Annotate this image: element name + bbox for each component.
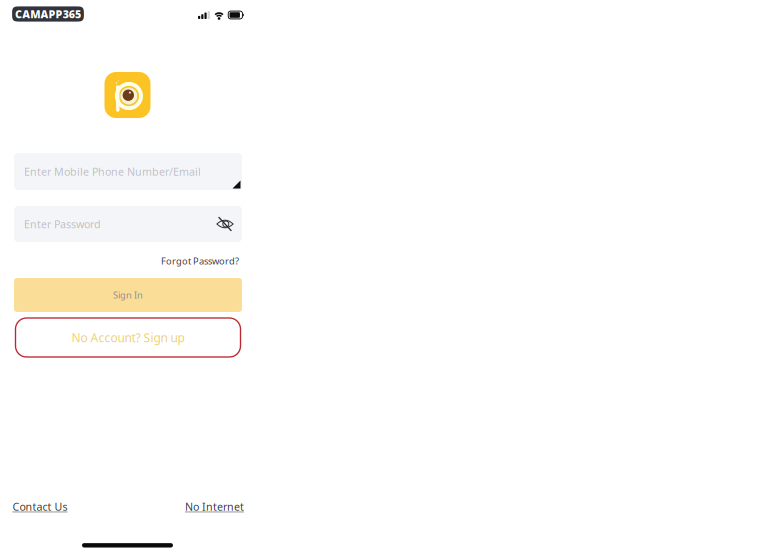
button[interactable]: Show password [216,216,242,232]
staticText: Enter Mobile Phone Number/Email [24,164,201,179]
button[interactable]: No Internet [183,496,246,517]
staticText: Forgot Password? [161,255,239,267]
button[interactable]: Forgot Password? [159,252,241,270]
button[interactable]: Contact Us [10,496,69,517]
staticText: Sign In [113,289,143,301]
staticText: CAMAPP365 [15,7,81,21]
button[interactable]: No Account? Sign up [15,318,240,357]
staticText: Contact Us [12,499,67,514]
staticText: No Internet [185,499,244,514]
staticText: No Account? Sign up [71,329,184,345]
button[interactable]: Enter Password [14,206,242,242]
button[interactable]: Sign In [14,278,242,312]
staticText: Enter Password [24,217,101,231]
button[interactable]: Enter Mobile Phone Number/Email [14,153,242,190]
